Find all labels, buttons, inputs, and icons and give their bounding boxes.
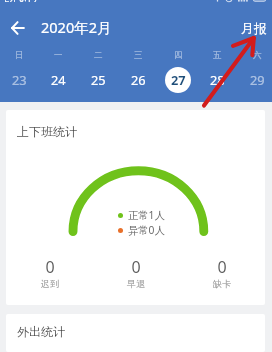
staticText: 25 xyxy=(91,71,106,88)
button[interactable]: 一 xyxy=(38,48,78,93)
staticText: 0 xyxy=(217,256,227,278)
staticText: 2020年2月 xyxy=(41,17,112,37)
staticText: 月报 xyxy=(241,20,267,36)
staticText: 外出统计 xyxy=(17,324,65,339)
staticText: 23 xyxy=(12,71,27,88)
button[interactable]: 0 xyxy=(93,256,179,289)
staticText: 日 xyxy=(15,50,24,61)
staticText: 0 xyxy=(45,256,55,278)
button[interactable]: 五 xyxy=(197,48,237,93)
staticText: 早退 xyxy=(127,278,145,289)
button[interactable]: 月报 xyxy=(227,12,272,44)
button[interactable]: 三 xyxy=(118,48,158,93)
staticText: 二 xyxy=(94,50,103,61)
button[interactable]: 二 xyxy=(78,48,118,93)
staticText: 缺卡 xyxy=(213,278,231,289)
staticText: 三 xyxy=(134,50,143,61)
staticText: 上下班统计 xyxy=(17,124,77,139)
staticText: 24 xyxy=(51,71,66,88)
staticText: 正常1人 xyxy=(128,208,165,222)
button[interactable]: 0 xyxy=(6,256,93,289)
staticText: 29 xyxy=(250,71,265,88)
staticText: 27 xyxy=(171,71,186,88)
staticText: 上午8:12 xyxy=(1,0,37,2)
staticText: 异常0人 xyxy=(128,223,165,237)
button[interactable]: 日 xyxy=(0,48,39,93)
button[interactable]: 0 xyxy=(179,256,265,289)
staticText: 26 xyxy=(131,71,146,88)
staticText: 四 xyxy=(174,50,183,61)
button[interactable]: 四 xyxy=(158,48,198,93)
staticText: 一 xyxy=(54,50,63,61)
staticText: 0 xyxy=(131,256,141,278)
staticText: 迟到 xyxy=(41,278,59,289)
button[interactable]: 返回 xyxy=(2,12,34,44)
button[interactable]: 六 xyxy=(237,48,272,93)
staticText: 28 xyxy=(210,71,225,88)
staticText: 五 xyxy=(213,50,222,61)
staticText: 六 xyxy=(253,50,262,61)
